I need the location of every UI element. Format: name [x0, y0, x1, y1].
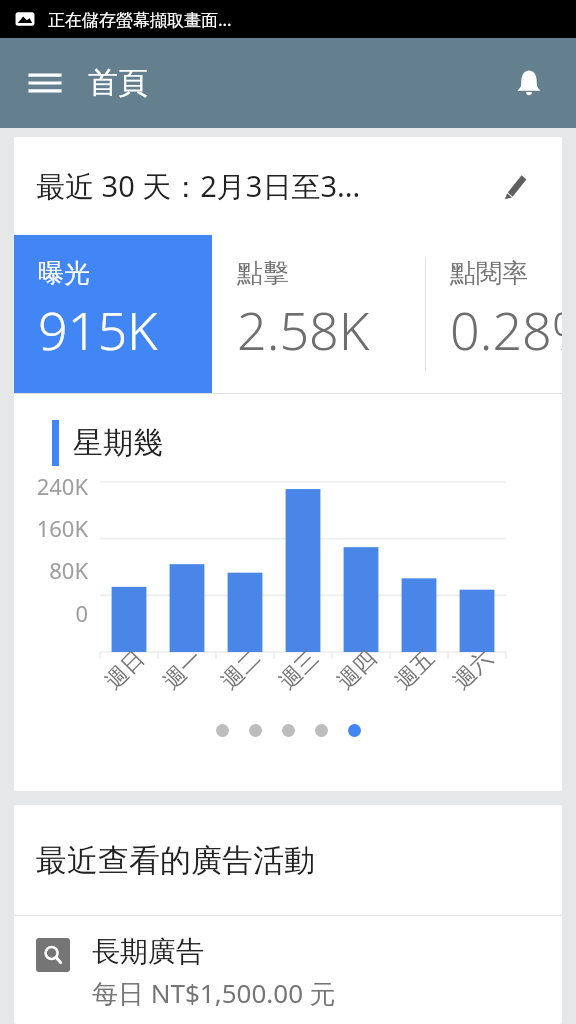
staticText: 星期幾 — [73, 424, 163, 462]
button[interactable]: 最近 30 天：2月3日至3... — [14, 137, 562, 235]
staticText: 週一 — [157, 644, 208, 695]
staticText: 週三 — [273, 644, 324, 695]
staticText: 正在儲存螢幕擷取畫面... — [48, 8, 232, 31]
staticText: 週四 — [331, 644, 382, 695]
staticText: 2.58K — [237, 294, 370, 365]
button[interactable]: Page 5 — [348, 724, 361, 737]
button[interactable]: 長期廣告 — [14, 916, 562, 1024]
staticText: 每日 NT$1,500.00 元 — [92, 975, 336, 1011]
staticText: 最近 30 天：2月3日至3... — [36, 166, 488, 206]
staticText: 長期廣告 — [92, 934, 204, 969]
staticText: 首頁 — [88, 64, 148, 102]
button[interactable]: Edit date range — [488, 159, 542, 213]
button[interactable]: 最近查看的廣告活動 — [14, 805, 562, 915]
staticText: 點擊 — [237, 257, 289, 290]
staticText: 週二 — [215, 644, 266, 695]
staticText: 0 — [75, 598, 88, 628]
staticText: 0.28% — [450, 294, 562, 365]
staticText: 915K — [38, 294, 158, 365]
staticText: 曝光 — [38, 257, 90, 290]
staticText: 80K — [49, 555, 88, 585]
button[interactable]: Page 4 — [315, 724, 328, 737]
staticText: 週六 — [447, 644, 498, 695]
button[interactable]: Page 1 — [216, 724, 229, 737]
button[interactable]: Open navigation menu — [14, 52, 76, 114]
staticText: 週五 — [389, 644, 440, 695]
staticText: 點閱率 — [450, 257, 528, 290]
staticText: 週日 — [99, 644, 150, 695]
staticText: 160K — [36, 513, 88, 543]
button[interactable]: 曝光 — [14, 235, 212, 393]
staticText: 最近查看的廣告活動 — [36, 841, 315, 880]
staticText: 240K — [36, 471, 88, 501]
button[interactable]: 點閱率 — [426, 235, 562, 393]
button[interactable]: Page 2 — [249, 724, 262, 737]
button[interactable]: Notifications — [498, 52, 560, 114]
button[interactable]: 點擊 — [213, 235, 425, 393]
button[interactable]: Page 3 — [282, 724, 295, 737]
